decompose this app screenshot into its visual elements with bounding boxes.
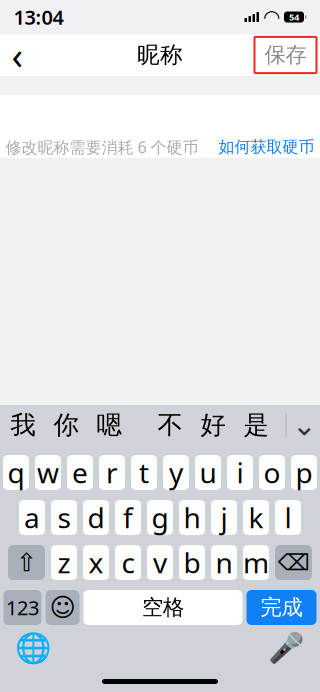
staticText: ⌫ <box>277 550 309 575</box>
button[interactable]: 你 <box>44 405 87 445</box>
button[interactable]: 123 <box>3 590 41 625</box>
button[interactable]: z <box>51 545 77 580</box>
staticText: w <box>37 454 59 491</box>
staticText: l <box>284 499 291 536</box>
staticText: 好 <box>200 409 225 440</box>
staticText: x <box>88 544 103 581</box>
staticText: e <box>72 454 88 491</box>
button[interactable]: k <box>243 500 269 535</box>
staticText: m <box>243 544 269 581</box>
button[interactable]: l <box>275 500 301 535</box>
staticText: ‹ <box>11 30 23 80</box>
button[interactable]: q <box>3 455 29 490</box>
staticText: 123 <box>6 594 39 621</box>
staticText: 嗯 <box>96 409 121 440</box>
button[interactable]: u <box>195 455 221 490</box>
button[interactable]: d <box>83 500 109 535</box>
button[interactable]: m <box>243 545 269 580</box>
button[interactable]: Emoji <box>45 590 79 625</box>
button[interactable]: j <box>211 500 237 535</box>
button[interactable]: f <box>115 500 141 535</box>
button[interactable]: x <box>83 545 109 580</box>
staticText: v <box>153 544 167 581</box>
button[interactable]: h <box>179 500 205 535</box>
button[interactable]: i <box>227 455 253 490</box>
staticText: h <box>183 499 200 536</box>
button[interactable]: n <box>211 545 237 580</box>
staticText: q <box>7 454 24 491</box>
staticText: 如何获取硬币 <box>218 137 314 157</box>
staticText: 空格 <box>142 594 184 621</box>
button[interactable]: 嗯 <box>87 405 130 445</box>
staticText: p <box>295 454 312 491</box>
staticText: t <box>139 454 149 491</box>
staticText: 昵称 <box>137 41 183 69</box>
staticText: d <box>87 499 104 536</box>
staticText: 13:04 <box>13 4 63 30</box>
staticText: ☺ <box>49 593 75 622</box>
button[interactable]: p <box>291 455 317 490</box>
button[interactable]: 我 <box>1 405 44 445</box>
staticText: k <box>248 499 263 536</box>
staticText: y <box>169 454 183 491</box>
staticText: a <box>24 499 40 536</box>
staticText: ⌄ <box>292 408 317 442</box>
button[interactable]: 不 <box>148 405 191 445</box>
staticText: z <box>57 544 70 581</box>
button[interactable]: a <box>19 500 45 535</box>
button[interactable]: o <box>259 455 285 490</box>
staticText: ⇧ <box>16 548 37 577</box>
staticText: 我 <box>10 409 35 440</box>
button[interactable]: t <box>131 455 157 490</box>
button[interactable]: g <box>147 500 173 535</box>
button[interactable]: Delete <box>275 545 312 580</box>
button[interactable]: 如何获取硬币 <box>218 137 314 157</box>
staticText: u <box>199 454 216 491</box>
staticText: 修改昵称需要消耗 6 个硬币 <box>5 136 198 158</box>
button[interactable]: s <box>51 500 77 535</box>
button[interactable]: w <box>35 455 61 490</box>
staticText: 保存 <box>264 42 306 68</box>
staticText: 不 <box>157 409 182 440</box>
staticText: o <box>263 454 280 491</box>
staticText: r <box>106 454 118 491</box>
staticText: g <box>151 499 168 536</box>
staticText: c <box>121 544 134 581</box>
staticText: ◠ <box>264 6 279 28</box>
button[interactable]: 完成 <box>246 590 316 625</box>
button[interactable]: 好 <box>191 405 234 445</box>
button[interactable]: Shift <box>8 545 45 580</box>
staticText: n <box>215 544 232 581</box>
staticText: i <box>236 454 243 491</box>
staticText: 54 <box>289 11 299 23</box>
staticText: s <box>57 499 70 536</box>
button[interactable]: Switch keyboard <box>11 630 55 666</box>
button[interactable]: 保存 <box>254 37 320 73</box>
button[interactable]: Dictation <box>264 630 308 666</box>
button[interactable]: 空格 <box>83 590 242 625</box>
staticText: 完成 <box>260 594 302 621</box>
button[interactable]: y <box>163 455 189 490</box>
staticText: f <box>123 499 133 536</box>
staticText: j <box>220 499 227 536</box>
staticText: b <box>183 544 200 581</box>
staticText: 是 <box>243 409 268 440</box>
button[interactable]: v <box>147 545 173 580</box>
staticText: 🌐 <box>15 631 52 665</box>
button[interactable]: Back <box>0 34 39 76</box>
staticText: 🎤 <box>268 631 305 665</box>
button[interactable]: Hide candidates <box>286 405 320 445</box>
button[interactable]: b <box>179 545 205 580</box>
button[interactable]: c <box>115 545 141 580</box>
button[interactable]: r <box>99 455 125 490</box>
button[interactable]: 是 <box>234 405 277 445</box>
button[interactable]: e <box>67 455 93 490</box>
staticText: 你 <box>53 409 78 440</box>
